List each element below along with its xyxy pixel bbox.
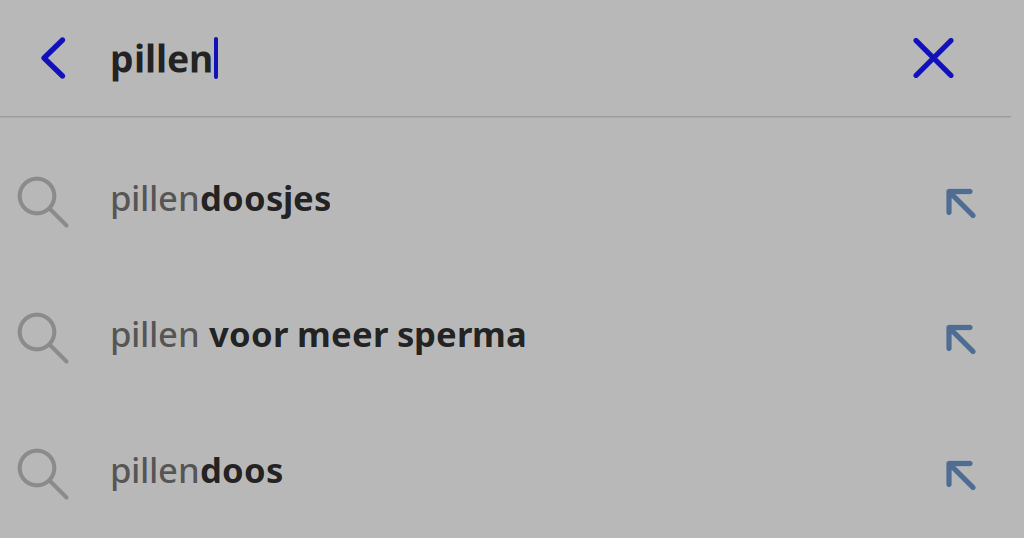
staticText: pillen	[110, 446, 200, 492]
staticText: doosjes	[200, 174, 331, 220]
staticText: pillen	[110, 33, 213, 83]
button[interactable]: pillendoosjes	[0, 129, 1024, 265]
button[interactable]: pillendoos	[0, 401, 1024, 537]
button[interactable]: Back	[0, 0, 80, 116]
button[interactable]: pillen voor meer sperma	[0, 265, 1024, 401]
staticText: pillen	[110, 174, 200, 220]
staticText: pillen	[110, 310, 209, 356]
staticText: doos	[200, 446, 283, 492]
staticText: voor meer sperma	[209, 310, 527, 356]
button[interactable]: Clear search	[893, 0, 1024, 116]
button[interactable]: Search field, pillen	[80, 0, 893, 116]
